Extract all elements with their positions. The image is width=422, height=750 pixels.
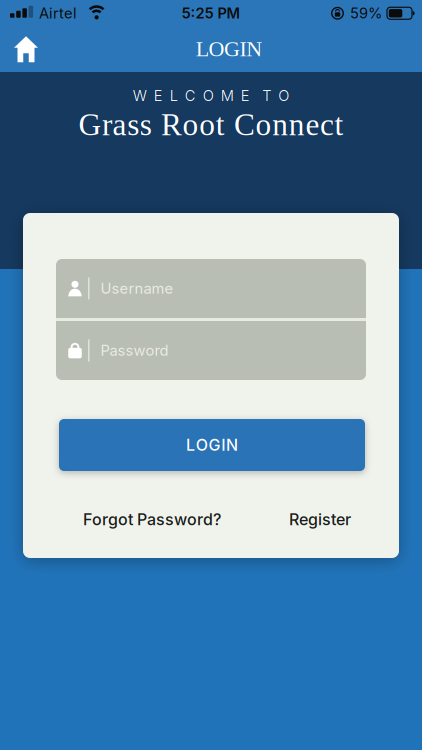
staticText: Grass Root Connect xyxy=(78,107,344,142)
button[interactable]: Home xyxy=(0,25,38,73)
staticText: Airtel xyxy=(39,5,77,22)
staticText: Password xyxy=(100,342,168,359)
staticText: 5:25 PM xyxy=(181,5,240,22)
staticText: 59% xyxy=(350,5,382,22)
button[interactable]: Password xyxy=(56,321,366,380)
staticText: Register xyxy=(289,510,351,529)
button[interactable]: Forgot Password? xyxy=(83,510,221,529)
staticText: LOGIN xyxy=(196,37,262,61)
staticText: W E L C O M E T O xyxy=(133,87,289,104)
button[interactable]: Username xyxy=(56,259,366,318)
staticText: LOGIN xyxy=(186,436,238,454)
button[interactable]: Register xyxy=(289,510,351,529)
staticText: Forgot Password? xyxy=(83,510,221,529)
button[interactable]: LOGIN xyxy=(59,419,365,471)
staticText: Username xyxy=(100,280,173,297)
